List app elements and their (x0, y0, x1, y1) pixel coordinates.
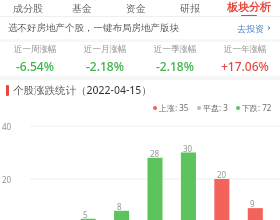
staticText: 选不好房地产个股，一键布局房地产版块 (8, 22, 179, 34)
button[interactable]: 研报 (163, 0, 217, 16)
button[interactable]: 成分股 (0, 0, 55, 16)
staticText: 40 (2, 121, 12, 132)
button[interactable]: 近一月涨幅 (70, 42, 140, 76)
staticText: 成分股 (13, 2, 43, 15)
staticText: 板块分析 (227, 0, 271, 14)
staticText: 下跌: 72 (242, 102, 272, 113)
button[interactable]: 40 (0, 114, 280, 220)
staticText: 平盘: 3 (203, 102, 228, 113)
staticText: 30 (183, 143, 193, 154)
button[interactable]: 选不好房地产个股，一键布局房地产版块 (0, 17, 280, 39)
staticText: -2.18% (156, 58, 194, 74)
button[interactable]: 近一季涨幅 (140, 42, 210, 76)
staticText: 5 (83, 209, 88, 220)
staticText: 28 (150, 148, 160, 159)
staticText: 上涨: 35 (159, 102, 189, 113)
staticText: -2.18% (86, 58, 124, 74)
staticText: 基金 (72, 2, 92, 15)
staticText: +17.06% (221, 58, 269, 74)
staticText: 资金 (126, 2, 146, 15)
button[interactable]: 板块分析 (217, 0, 280, 16)
staticText: 近一周涨幅 (14, 44, 57, 55)
button[interactable]: 近一年涨幅 (210, 42, 280, 76)
staticText: 近一月涨幅 (84, 44, 127, 55)
button[interactable]: 资金 (109, 0, 163, 16)
staticText: 20 (2, 174, 12, 185)
button[interactable]: 基金 (55, 0, 109, 16)
staticText: 近一季涨幅 (154, 44, 197, 55)
staticText: 去投资 (237, 23, 264, 34)
staticText: 8 (117, 201, 122, 212)
staticText: 20 (217, 169, 227, 180)
staticText: 个股涨跌统计（2022-04-15） (13, 83, 152, 97)
button[interactable]: 近一周涨幅 (0, 42, 70, 76)
staticText: 近一年涨幅 (224, 44, 267, 55)
staticText: 9 (250, 198, 255, 209)
staticText: -6.54% (16, 58, 54, 74)
staticText: 研报 (180, 2, 200, 15)
